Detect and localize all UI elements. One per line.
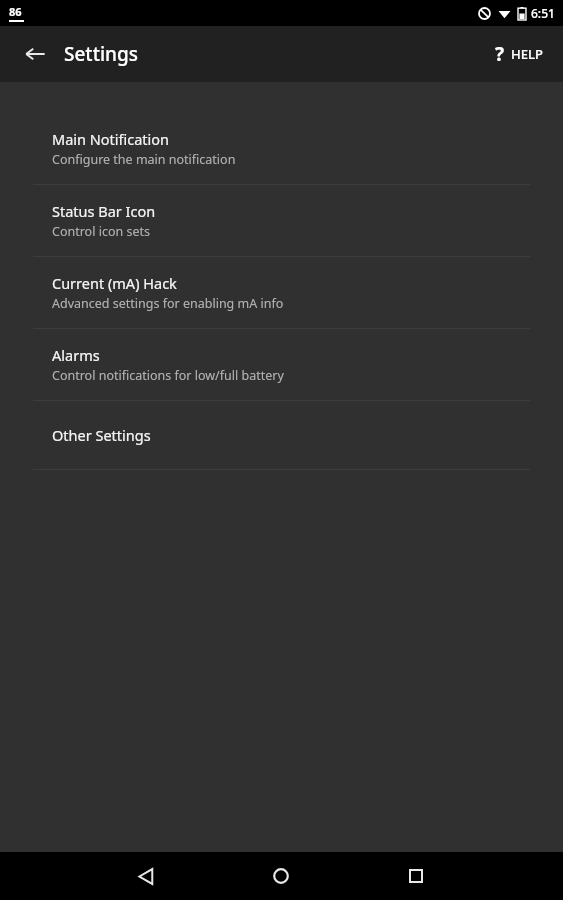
staticText: Main Notification [52, 129, 170, 149]
button[interactable]: Status Bar Icon [0, 185, 563, 256]
button[interactable]: Main Notification [0, 113, 563, 184]
staticText: Settings [64, 41, 138, 67]
staticText: HELP [511, 45, 543, 63]
staticText: 6:51 [531, 5, 555, 21]
button[interactable]: ? [489, 33, 549, 75]
staticText: Control icon sets [52, 223, 150, 240]
staticText: Other Settings [52, 425, 151, 445]
button[interactable]: Back [124, 854, 168, 898]
staticText: Status Bar Icon [52, 201, 156, 221]
staticText: Configure the main notification [52, 151, 236, 168]
button[interactable]: Alarms [0, 329, 563, 400]
button[interactable]: Home [259, 854, 303, 898]
staticText: Advanced settings for enabling mA info [52, 295, 284, 312]
button[interactable]: Recent apps [394, 854, 438, 898]
button[interactable]: Current (mA) Hack [0, 257, 563, 328]
staticText: Control notifications for low/full batte… [52, 367, 284, 384]
staticText: Current (mA) Hack [52, 273, 177, 293]
staticText: ? [495, 41, 505, 67]
button[interactable]: Back [14, 33, 56, 75]
staticText: 86 [9, 4, 22, 19]
staticText: Alarms [52, 345, 100, 365]
button[interactable]: Other Settings [0, 401, 563, 469]
